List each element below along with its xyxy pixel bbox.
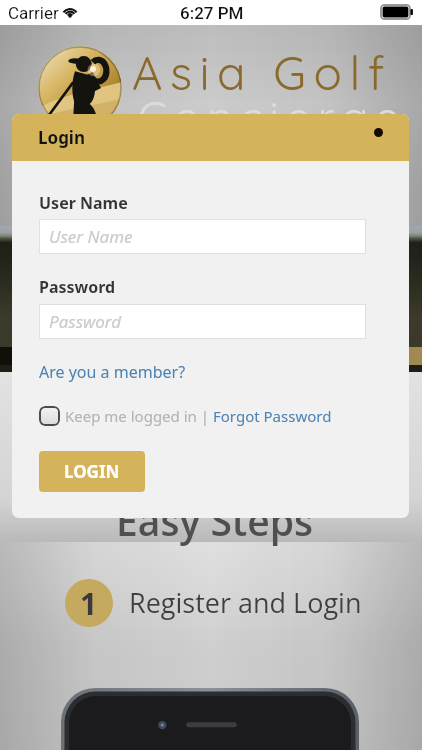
staticText: Keep me logged in | <box>65 406 213 426</box>
staticText: Asia Golf <box>132 43 393 102</box>
staticText: Carrier <box>8 3 59 23</box>
staticText: User Name <box>49 225 133 248</box>
staticText: Register and Login <box>129 584 362 621</box>
staticText: Login <box>38 126 86 149</box>
staticText: 6:27 PM <box>180 3 244 23</box>
staticText: Are you a member? <box>39 361 186 383</box>
button[interactable]: User Name <box>39 219 366 254</box>
staticText: Forgot Password <box>213 406 332 426</box>
button[interactable]: Password <box>39 304 366 339</box>
staticText: Easy Steps <box>116 494 313 547</box>
button[interactable]: Close <box>367 121 390 144</box>
staticText: 1 <box>80 583 98 624</box>
button[interactable]: Forgot Password <box>213 406 332 426</box>
staticText: Concierge <box>138 89 407 144</box>
staticText: LOGIN <box>64 460 120 483</box>
button[interactable]: LOGIN <box>39 451 145 492</box>
button[interactable]: Are you a member? <box>39 361 186 383</box>
staticText: User Name <box>39 192 128 214</box>
button[interactable]: Keep me logged in <box>39 406 60 426</box>
staticText: Password <box>39 276 116 298</box>
staticText: Password <box>49 310 122 333</box>
